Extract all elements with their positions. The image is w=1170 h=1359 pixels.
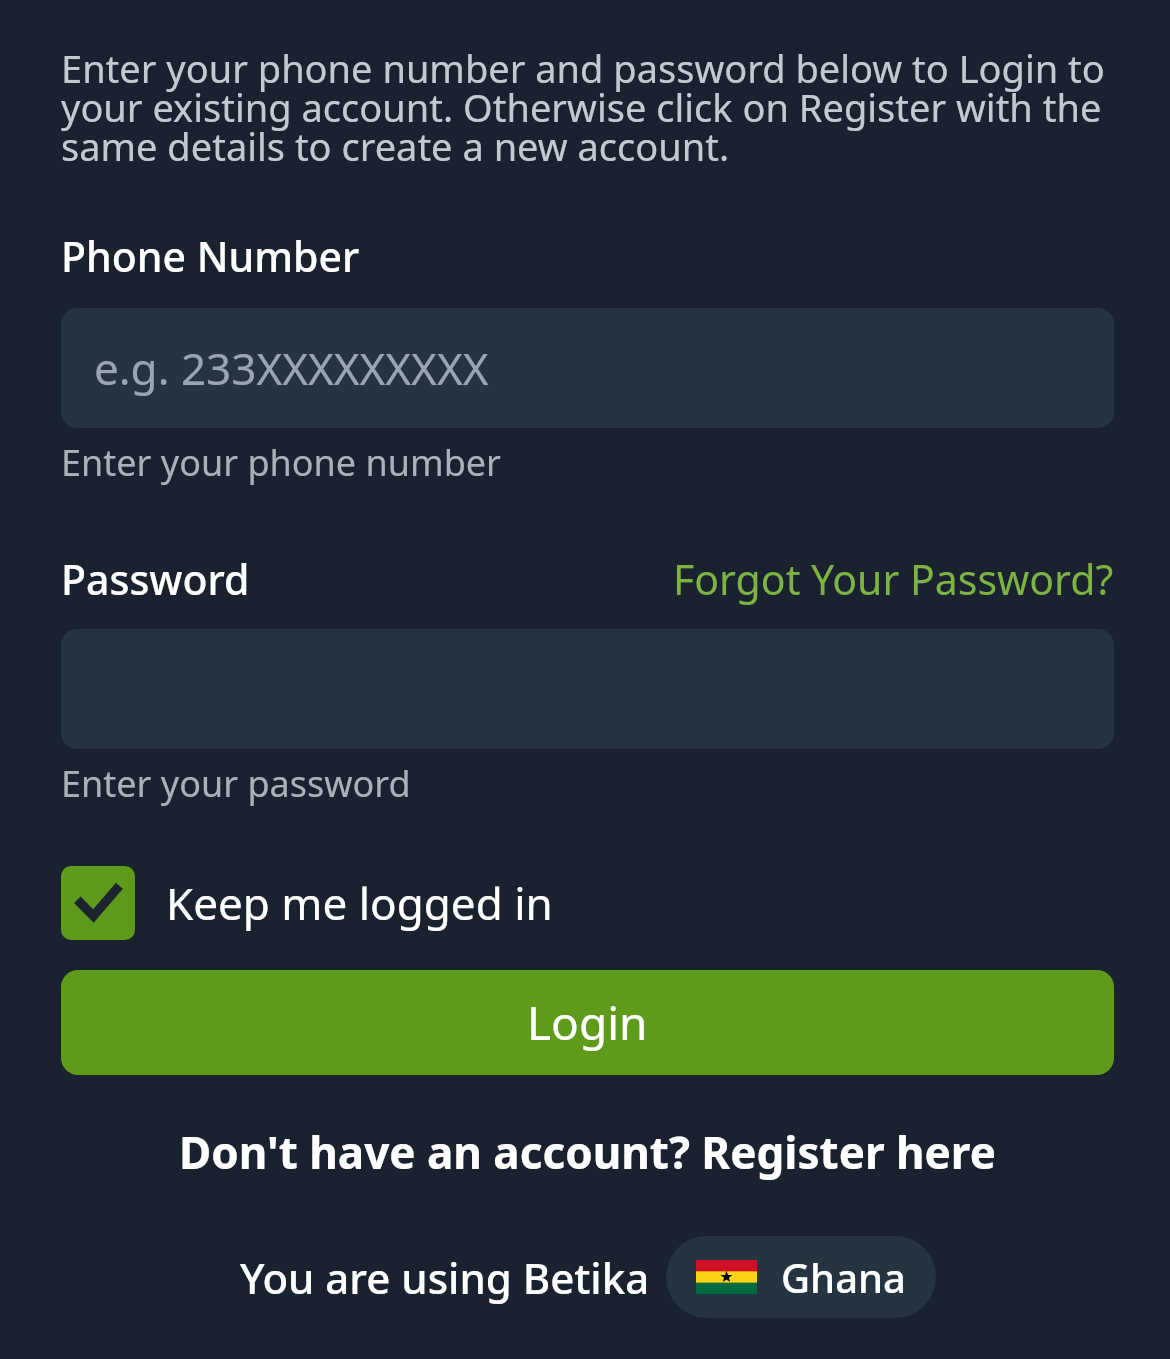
staticText: Enter your phone number and password bel…	[61, 42, 1114, 172]
button[interactable]: Keep me logged in	[61, 866, 553, 940]
staticText: Phone Number	[61, 228, 360, 284]
button[interactable]: Forgot Your Password?	[673, 551, 1114, 607]
staticText: Forgot Your Password?	[673, 551, 1114, 607]
button[interactable]: Don't have an account? Register here	[61, 1122, 1114, 1182]
button[interactable]: Ghana	[666, 1236, 936, 1318]
staticText: You are using Betika	[240, 1249, 650, 1306]
staticText: Don't have an account? Register here	[179, 1122, 996, 1182]
staticText: Login	[527, 991, 648, 1054]
button[interactable]: Login	[61, 970, 1114, 1075]
staticText: Ghana	[781, 1250, 906, 1304]
staticText: Password	[61, 551, 250, 607]
staticText: e.g. 233XXXXXXXXX	[94, 338, 489, 398]
staticText: Keep me logged in	[166, 873, 553, 933]
staticText: Enter your password	[61, 759, 411, 808]
button[interactable]: e.g. 233XXXXXXXXX	[61, 308, 1114, 428]
staticText: Enter your phone number	[61, 438, 501, 487]
